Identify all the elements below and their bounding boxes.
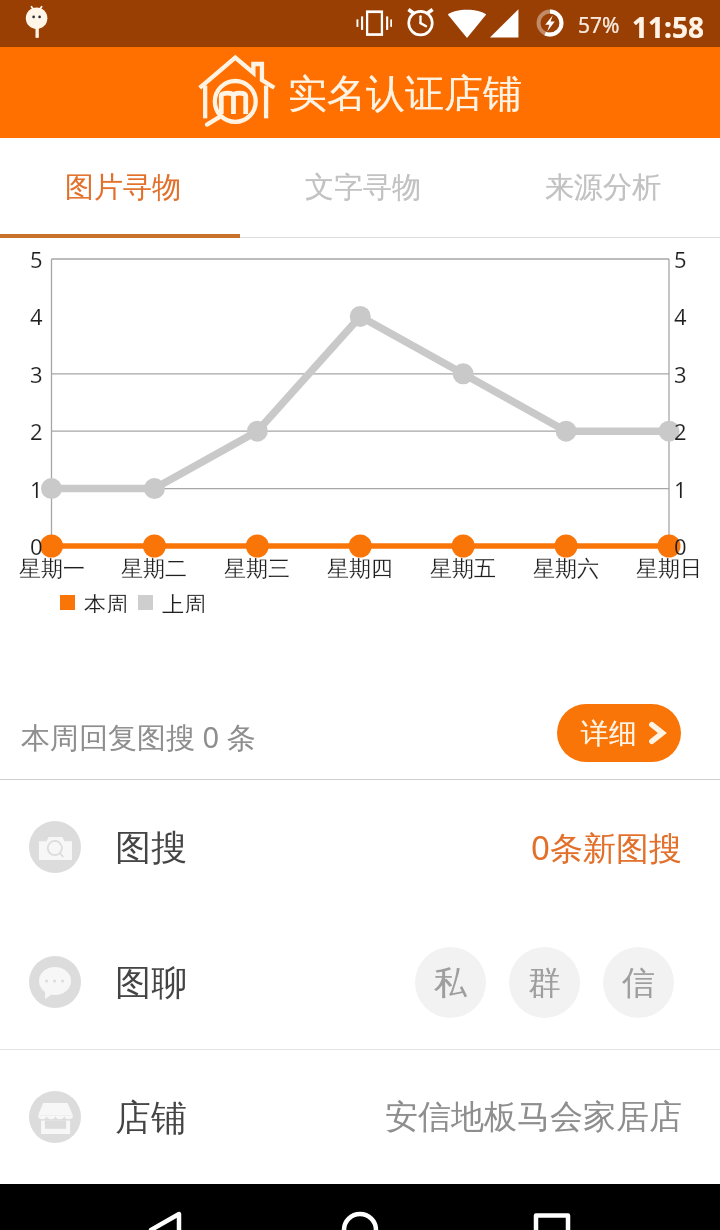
staticText: 星期二	[121, 555, 187, 583]
staticText: 1	[674, 474, 687, 504]
staticText: 星期四	[327, 555, 393, 583]
button[interactable]: 详细	[557, 704, 681, 762]
staticText: 星期一	[19, 555, 85, 583]
button[interactable]: 群	[509, 947, 580, 1018]
staticText: 图片寻物	[65, 169, 181, 206]
button[interactable]: 文字寻物	[240, 138, 480, 238]
staticText: 来源分析	[545, 169, 661, 206]
staticText: 0条新图搜	[531, 825, 682, 870]
staticText: 群	[528, 962, 561, 1004]
staticText: 5	[30, 244, 43, 274]
staticText: 星期六	[533, 555, 599, 583]
staticText: 详细	[581, 716, 637, 751]
staticText: 文字寻物	[305, 169, 421, 206]
staticText: 4	[30, 301, 43, 331]
staticText: 信	[622, 962, 655, 1004]
staticText: 0	[674, 531, 687, 561]
staticText: 实名认证店铺	[288, 69, 522, 118]
button[interactable]: Back	[126, 1190, 206, 1230]
staticText: 2	[674, 416, 687, 446]
staticText: 11:58	[632, 8, 704, 46]
staticText: 上周	[162, 591, 206, 613]
button[interactable]: 图聊	[0, 916, 720, 1048]
staticText: 3	[30, 359, 43, 389]
staticText: 星期日	[636, 555, 702, 583]
staticText: 星期三	[224, 555, 290, 583]
staticText: 5	[674, 244, 687, 274]
staticText: 安信地板马会家居店	[385, 1096, 682, 1138]
staticText: 图聊	[115, 960, 187, 1005]
staticText: 图搜	[115, 825, 187, 870]
staticText: 1	[30, 474, 43, 504]
staticText: 57%	[578, 11, 620, 40]
staticText: 3	[674, 359, 687, 389]
button[interactable]: Home	[320, 1190, 400, 1230]
staticText: 店铺	[115, 1095, 187, 1140]
staticText: 4	[674, 301, 687, 331]
staticText: 2	[30, 416, 43, 446]
staticText: 本周回复图搜 0 条	[21, 717, 256, 757]
button[interactable]: 信	[603, 947, 674, 1018]
staticText: 私	[434, 962, 467, 1004]
button[interactable]: 图片寻物	[0, 138, 240, 238]
staticText: 0	[30, 531, 43, 561]
button[interactable]: Recents	[512, 1190, 592, 1230]
staticText: 本周	[84, 591, 128, 613]
button[interactable]: 图搜	[0, 781, 720, 913]
button[interactable]: 来源分析	[480, 138, 720, 238]
staticText: 星期五	[430, 555, 496, 583]
button[interactable]: 私	[415, 947, 486, 1018]
button[interactable]: 店铺	[0, 1051, 720, 1183]
